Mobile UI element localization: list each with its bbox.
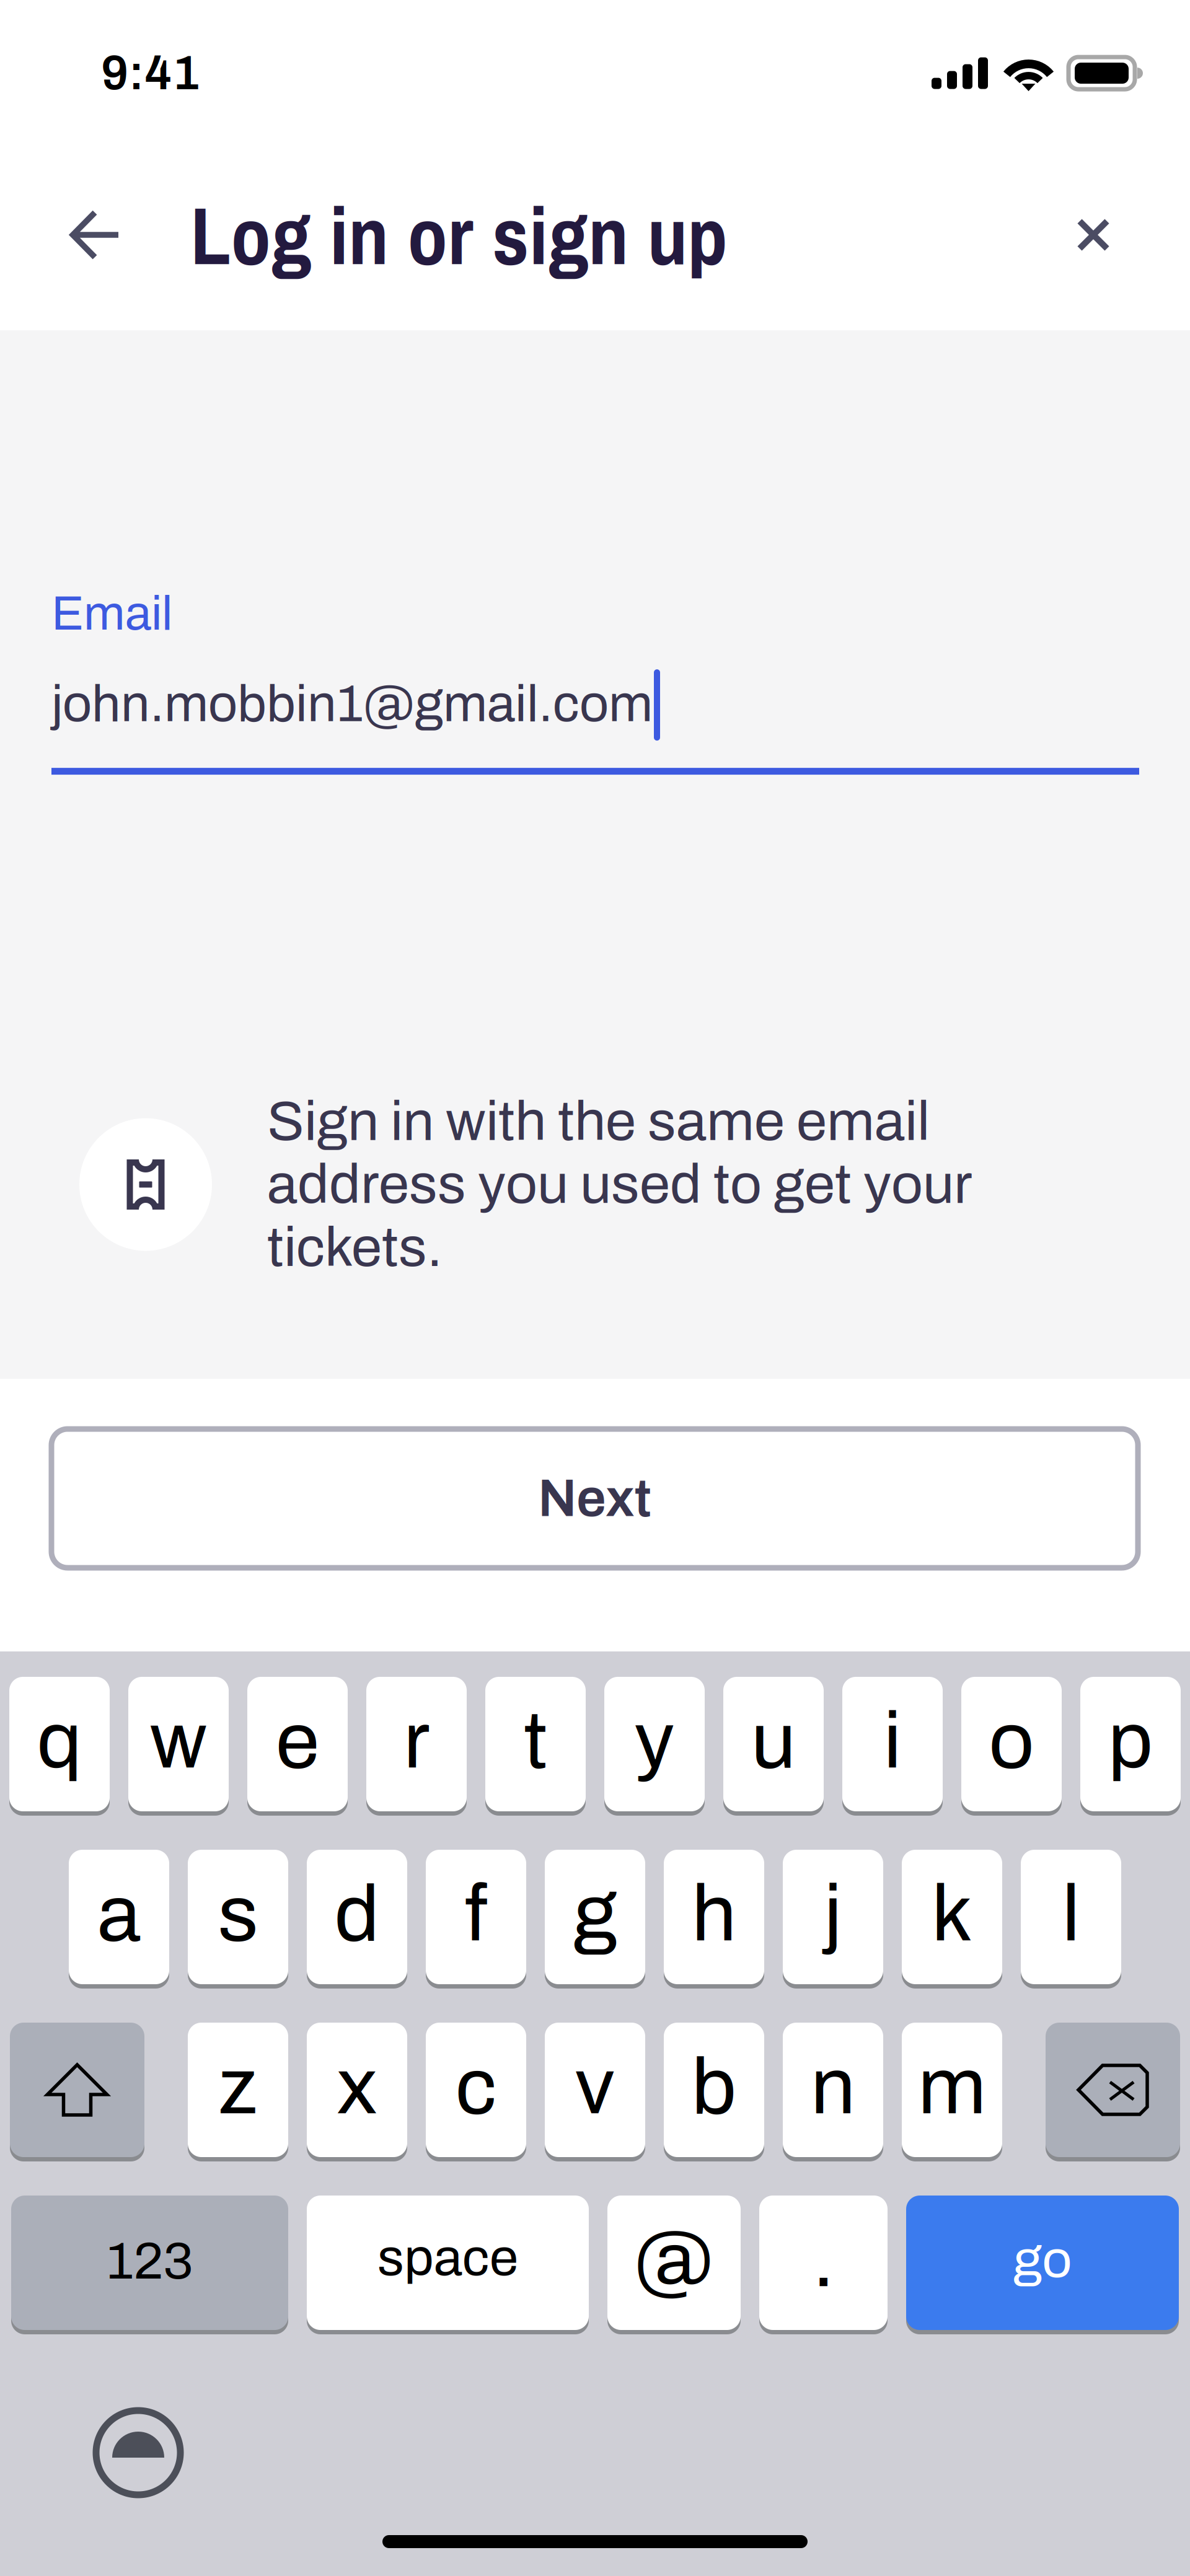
staticText: g	[573, 1871, 617, 1957]
staticText: u	[751, 1698, 796, 1784]
button[interactable]: Next	[51, 1429, 1138, 1568]
button[interactable]: Close	[1059, 201, 1127, 269]
staticText: 9:41	[101, 47, 200, 99]
staticText: Sign in with the same email address you …	[267, 1090, 971, 1279]
button[interactable]: Back	[59, 198, 132, 271]
button[interactable]: 123	[11, 2196, 288, 2334]
staticText: j	[824, 1871, 842, 1957]
staticText: a	[97, 1871, 141, 1957]
button[interactable]: x	[307, 2023, 407, 2161]
button[interactable]: h	[664, 1850, 764, 1989]
staticText: y	[634, 1698, 675, 1784]
button[interactable]: t	[485, 1677, 586, 1816]
staticText: z	[218, 2044, 258, 2130]
staticText: Next	[538, 1470, 651, 1527]
staticText: i	[884, 1698, 901, 1784]
button[interactable]: space	[307, 2196, 589, 2334]
staticText: o	[989, 1698, 1034, 1784]
staticText: p	[1108, 1698, 1153, 1784]
button[interactable]: Emoji keyboard	[92, 2406, 185, 2499]
staticText: k	[932, 1871, 972, 1957]
button[interactable]: p	[1080, 1677, 1181, 1816]
button[interactable]: Delete	[1046, 2023, 1180, 2161]
button[interactable]: @	[607, 2196, 741, 2334]
button[interactable]: o	[961, 1677, 1062, 1816]
staticText: e	[276, 1698, 319, 1784]
staticText: Log in or sign up	[190, 180, 728, 289]
staticText: s	[218, 1871, 258, 1957]
button[interactable]: s	[188, 1850, 288, 1989]
staticText: .	[813, 2217, 834, 2303]
button[interactable]: Shift	[10, 2023, 144, 2161]
staticText: f	[465, 1871, 487, 1957]
button[interactable]: e	[247, 1677, 348, 1816]
button[interactable]: d	[307, 1850, 407, 1989]
button[interactable]: r	[366, 1677, 467, 1816]
button[interactable]: .	[759, 2196, 888, 2334]
button[interactable]: z	[188, 2023, 288, 2161]
button[interactable]: g	[545, 1850, 645, 1989]
button[interactable]: q	[9, 1677, 110, 1816]
staticText: go	[1013, 2231, 1072, 2288]
staticText: t	[524, 1698, 547, 1784]
button[interactable]: j	[783, 1850, 883, 1989]
button[interactable]: f	[426, 1850, 526, 1989]
button[interactable]: m	[902, 2023, 1002, 2161]
button[interactable]: w	[128, 1677, 229, 1816]
button[interactable]: a	[69, 1850, 169, 1989]
staticText: h	[692, 1871, 736, 1957]
button[interactable]: c	[426, 2023, 526, 2161]
staticText: w	[150, 1698, 207, 1784]
staticText: john.mobbin1@gmail.com	[51, 676, 653, 732]
staticText: x	[337, 2044, 377, 2130]
button[interactable]: v	[545, 2023, 645, 2161]
button[interactable]: n	[783, 2023, 883, 2161]
staticText: l	[1062, 1871, 1080, 1957]
button[interactable]: b	[664, 2023, 764, 2161]
staticText: Email	[51, 587, 172, 640]
staticText: @	[634, 2217, 714, 2303]
staticText: n	[811, 2044, 855, 2130]
staticText: space	[377, 2229, 518, 2286]
staticText: v	[575, 2044, 615, 2130]
staticText: c	[456, 2044, 496, 2130]
staticText: b	[691, 2044, 737, 2130]
staticText: r	[403, 1698, 430, 1784]
staticText: q	[37, 1698, 82, 1784]
button[interactable]: u	[723, 1677, 824, 1816]
button[interactable]: l	[1021, 1850, 1121, 1989]
button[interactable]: k	[902, 1850, 1002, 1989]
button[interactable]: go	[906, 2196, 1179, 2334]
staticText: d	[334, 1871, 380, 1957]
staticText: 123	[106, 2233, 193, 2290]
button[interactable]: i	[842, 1677, 943, 1816]
staticText: m	[918, 2044, 986, 2130]
button[interactable]: y	[604, 1677, 705, 1816]
